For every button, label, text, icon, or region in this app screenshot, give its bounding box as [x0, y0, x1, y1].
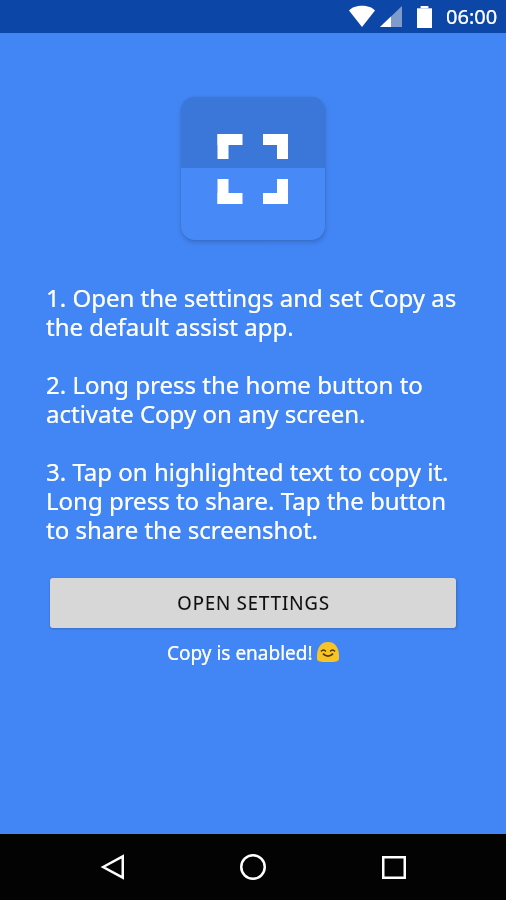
- button[interactable]: Home: [213, 834, 293, 900]
- button[interactable]: Back: [72, 834, 152, 900]
- staticText: Copy is enabled!: [167, 640, 313, 666]
- staticText: OPEN SETTINGS: [177, 590, 330, 616]
- staticText: 06:00: [446, 3, 498, 30]
- staticText: 1. Open the settings and set Copy as the…: [46, 281, 461, 546]
- button[interactable]: Recents: [354, 834, 434, 900]
- button[interactable]: OPEN SETTINGS: [50, 578, 456, 628]
